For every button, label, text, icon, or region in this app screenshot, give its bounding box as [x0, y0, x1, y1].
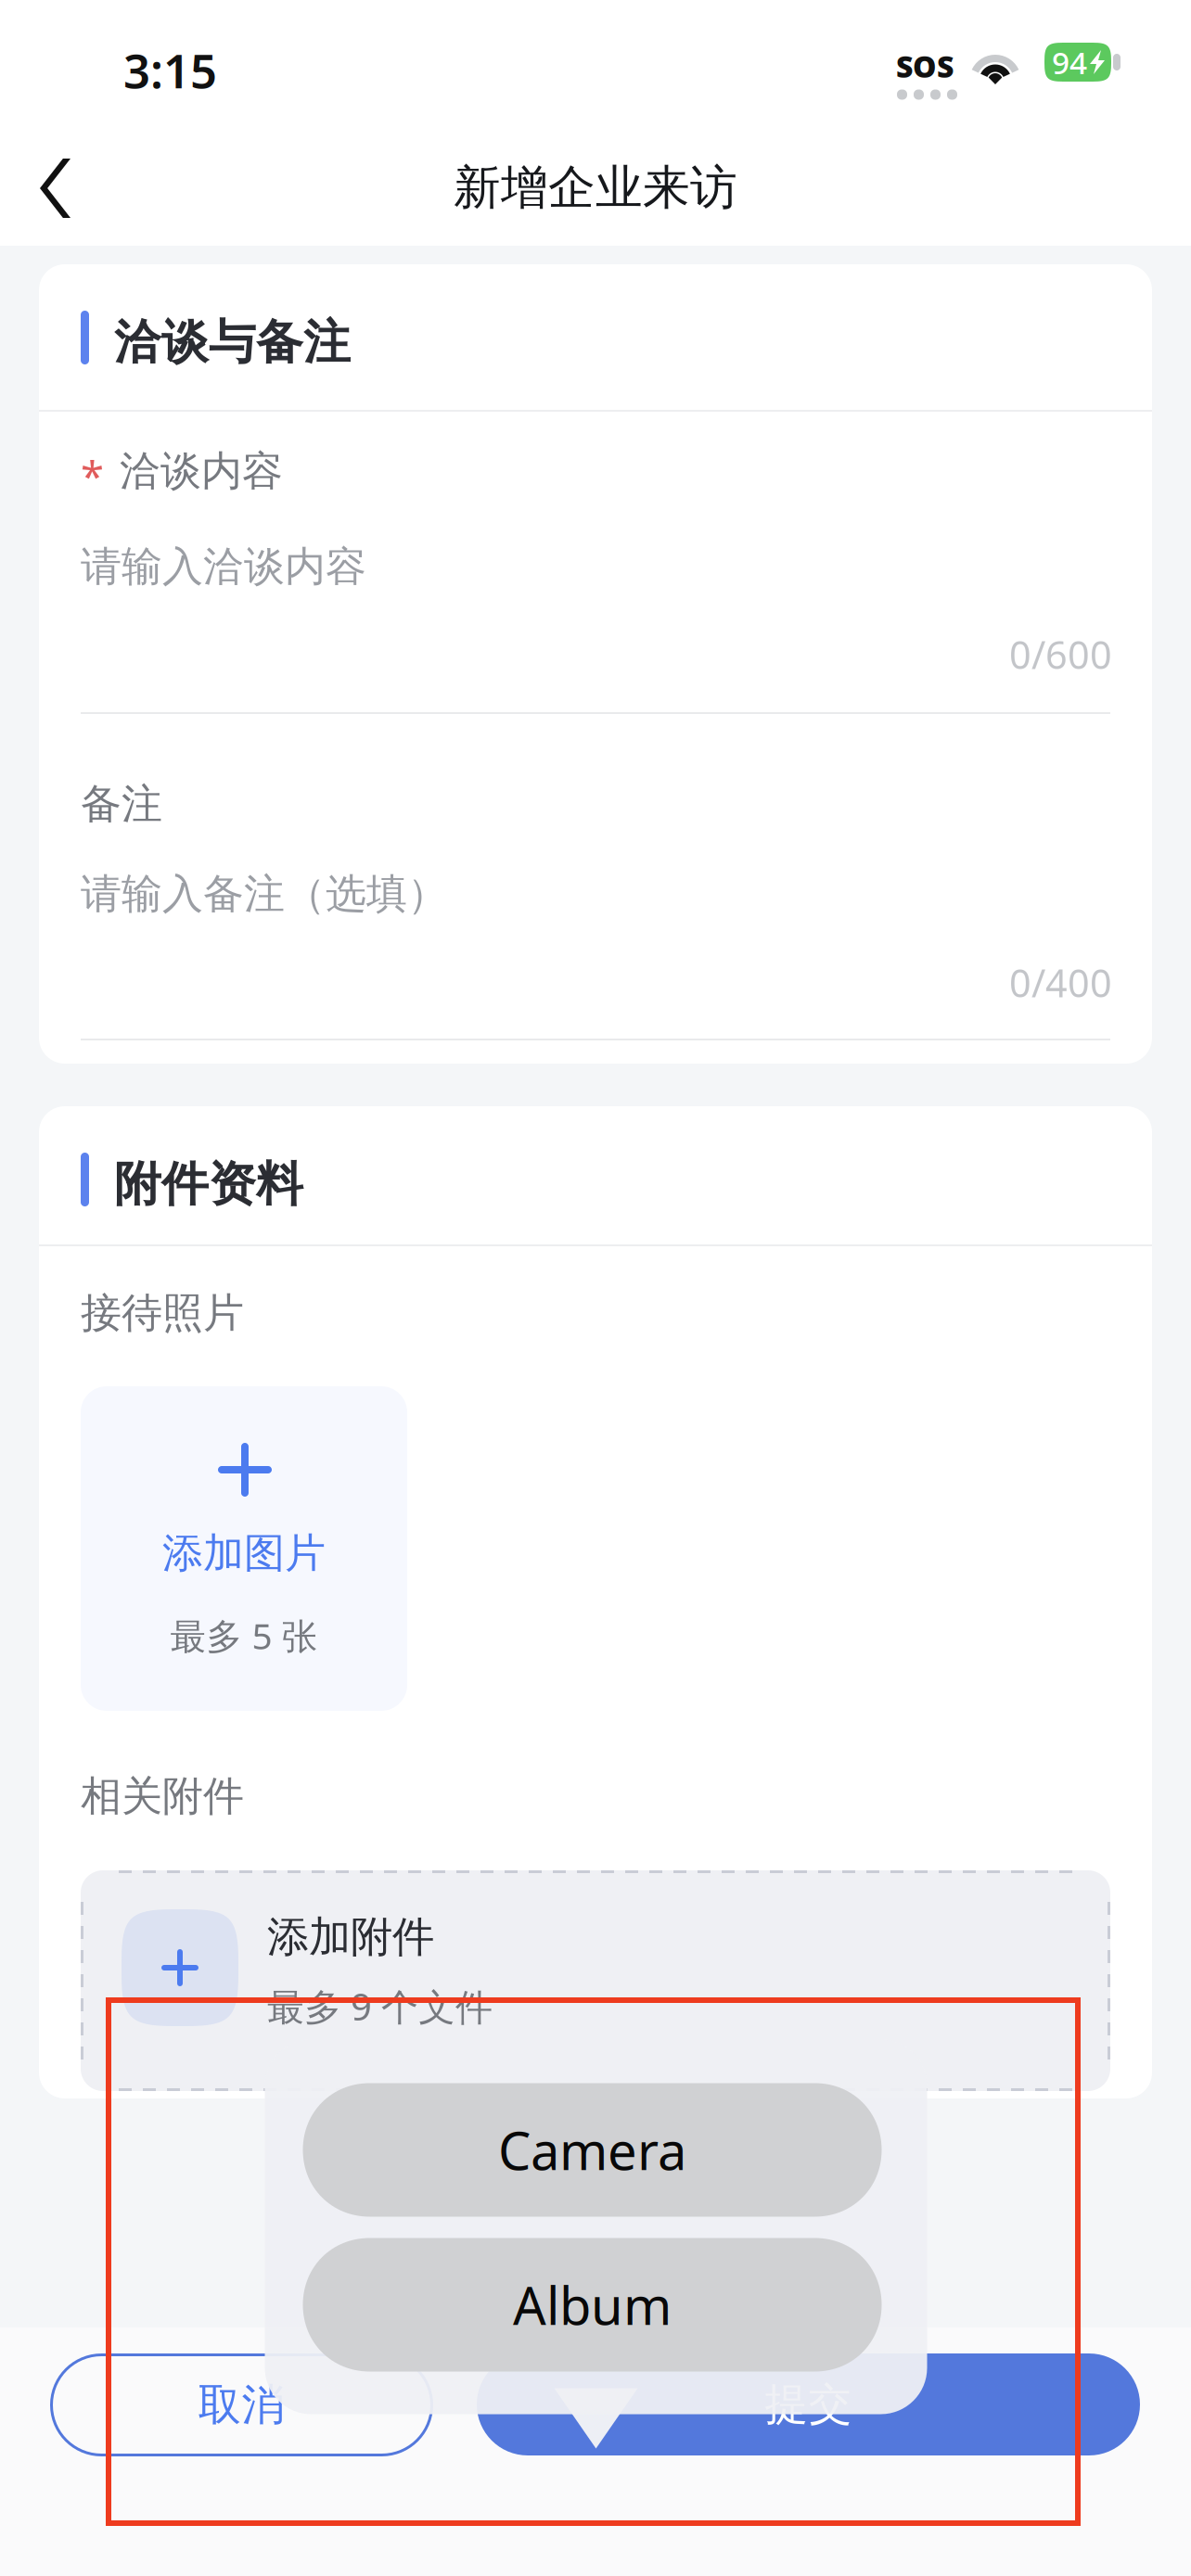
staticText: 添加图片 — [162, 1528, 326, 1578]
staticText: 相关附件 — [81, 1771, 244, 1821]
staticText: * — [81, 448, 104, 504]
staticText: 取消 — [198, 2378, 285, 2431]
button[interactable]: 取消 — [50, 2353, 433, 2456]
button[interactable]: 提交 — [477, 2353, 1140, 2455]
button[interactable]: Album — [303, 2238, 882, 2372]
staticText: 最多 5 张 — [170, 1612, 318, 1659]
button[interactable]: Camera — [303, 2083, 882, 2217]
staticText: 最多 9 个文件 — [267, 1982, 493, 2031]
staticText: 附件资料 — [114, 1155, 303, 1213]
staticText: 洽谈内容 — [120, 446, 283, 496]
staticText: 请输入备注（选填） — [81, 869, 448, 919]
staticText: 洽谈与备注 — [114, 313, 351, 371]
staticText: 94 — [1052, 42, 1087, 83]
staticText: Album — [513, 2270, 672, 2339]
staticText: 提交 — [765, 2378, 852, 2431]
staticText: Camera — [498, 2115, 686, 2184]
button[interactable]: 添加附件 — [81, 1870, 1110, 2091]
button[interactable]: 添加图片 — [81, 1386, 407, 1711]
staticText: 备注 — [81, 779, 162, 829]
staticText: 0/600 — [1009, 629, 1112, 680]
staticText: 新增企业来访 — [454, 159, 737, 217]
staticText: SOS — [896, 46, 954, 86]
staticText: 0/400 — [1009, 957, 1112, 1008]
staticText: 请输入洽谈内容 — [81, 542, 366, 592]
staticText: 添加附件 — [267, 1911, 434, 1963]
staticText: 3:15 — [123, 39, 217, 101]
staticText: 接待照片 — [81, 1288, 244, 1338]
button[interactable]: Back — [0, 130, 111, 246]
